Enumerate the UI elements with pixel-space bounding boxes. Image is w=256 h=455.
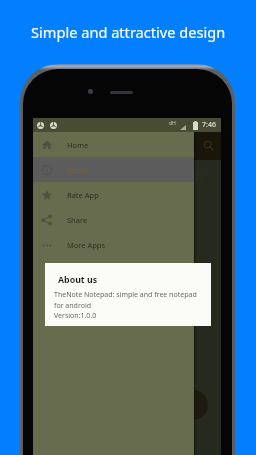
staticText: dH	[169, 120, 176, 127]
button[interactable]: Search	[203, 140, 215, 152]
button[interactable]: Add note	[178, 390, 208, 420]
staticText: History	[171, 169, 205, 183]
button[interactable]: Share	[33, 207, 194, 232]
button[interactable]: About	[33, 157, 194, 182]
staticText: Share	[67, 215, 88, 225]
staticText: Rate App	[67, 190, 99, 200]
staticText: Home	[67, 140, 89, 150]
button[interactable]: More Apps	[33, 232, 194, 257]
staticText: About us	[58, 274, 98, 286]
staticText: TheNote Notepad: simple and free notepad…	[54, 290, 197, 320]
staticText: About	[67, 165, 89, 175]
staticText: 7:46	[202, 120, 216, 130]
button[interactable]: About us	[45, 263, 211, 326]
button[interactable]: Home	[33, 132, 194, 157]
staticText: Simple and attractive design	[31, 22, 226, 42]
staticText: More Apps	[67, 240, 106, 250]
button[interactable]: Rate App	[33, 182, 194, 207]
